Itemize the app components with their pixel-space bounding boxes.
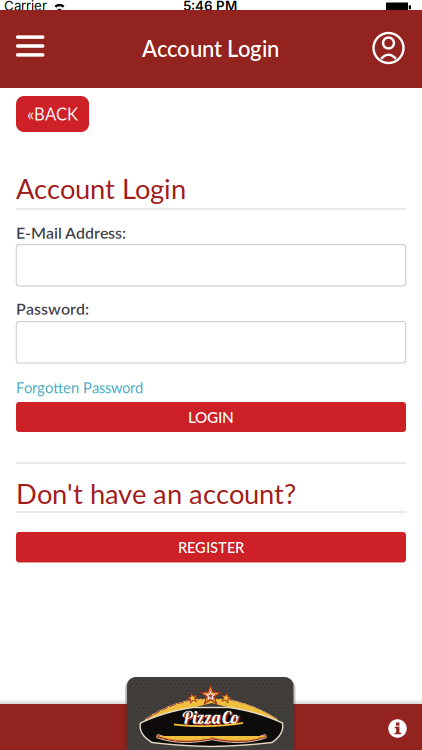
staticText: «BACK <box>27 104 78 124</box>
button[interactable]: LOGIN <box>16 402 406 432</box>
button[interactable]: Account <box>370 30 406 66</box>
staticText: LOGIN <box>188 408 234 426</box>
staticText: Account Login <box>142 35 279 62</box>
staticText: Carrier <box>4 0 47 14</box>
button[interactable]: Menu <box>16 35 44 57</box>
button[interactable]: «BACK <box>16 96 89 132</box>
staticText: Don't have an account? <box>16 477 296 510</box>
button[interactable]: Info <box>388 719 407 738</box>
button[interactable]: REGISTER <box>16 532 406 562</box>
staticText: 5:46 PM <box>183 0 237 14</box>
staticText: Password: <box>16 299 89 318</box>
staticText: REGISTER <box>178 538 244 556</box>
staticText: PizzaCo <box>183 707 241 729</box>
staticText: E-Mail Address: <box>16 223 126 242</box>
staticText: PizzaCo <box>181 706 239 728</box>
button[interactable]: Forgotten Password <box>16 379 143 396</box>
staticText: Forgotten Password <box>16 379 143 396</box>
staticText: Account Login <box>16 172 186 205</box>
